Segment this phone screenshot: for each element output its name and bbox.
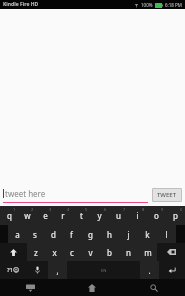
staticText: 3 xyxy=(49,207,52,212)
staticText: n xyxy=(126,247,131,258)
staticText: 7 xyxy=(123,207,126,212)
button[interactable]: x xyxy=(45,243,63,261)
button[interactable]: j xyxy=(119,225,138,243)
staticText: tweet here xyxy=(5,188,46,199)
button[interactable]: c xyxy=(63,243,81,261)
staticText: w xyxy=(24,210,31,221)
staticText: s xyxy=(33,229,37,240)
button[interactable]: k xyxy=(138,225,157,243)
button[interactable]: r xyxy=(54,206,72,225)
staticText: x xyxy=(52,247,57,258)
button[interactable]: z xyxy=(27,243,45,261)
button[interactable]: n xyxy=(119,243,138,261)
staticText: f xyxy=(70,229,73,240)
button[interactable]: , xyxy=(48,261,67,279)
staticText: r xyxy=(61,210,65,221)
staticText: . xyxy=(148,265,151,276)
button[interactable]: Symbols xyxy=(0,261,27,279)
button[interactable]: Hide keyboard xyxy=(0,279,61,296)
staticText: j xyxy=(127,229,130,240)
button[interactable]: Home xyxy=(61,279,123,296)
staticText: t xyxy=(80,210,83,221)
button[interactable]: w xyxy=(18,206,36,225)
staticText: 4 xyxy=(67,207,70,212)
staticText: 6:18 PM xyxy=(165,2,182,8)
staticText: 100% xyxy=(141,2,153,8)
staticText: d xyxy=(51,229,56,240)
staticText: 9 xyxy=(161,207,164,212)
staticText: 8 xyxy=(142,207,145,212)
staticText: EN xyxy=(101,268,107,273)
staticText: u xyxy=(116,210,121,221)
staticText: ?1☺ xyxy=(7,266,20,274)
button[interactable]: Voice input xyxy=(27,261,48,279)
staticText: i xyxy=(136,210,139,221)
button[interactable]: t xyxy=(72,206,90,225)
staticText: c xyxy=(70,247,74,258)
button[interactable]: s xyxy=(26,225,44,243)
button[interactable]: e xyxy=(36,206,54,225)
button[interactable]: TWEET xyxy=(152,188,182,202)
button[interactable]: Space xyxy=(67,261,140,279)
staticText: g xyxy=(88,229,93,240)
staticText: e xyxy=(43,210,48,221)
button[interactable]: h xyxy=(100,225,119,243)
button[interactable]: y xyxy=(90,206,109,225)
staticText: 6 xyxy=(104,207,107,212)
staticText: z xyxy=(34,247,38,258)
button[interactable]: d xyxy=(44,225,62,243)
button[interactable]: v xyxy=(81,243,100,261)
button[interactable]: Enter xyxy=(159,261,185,279)
button[interactable]: Search xyxy=(123,279,185,296)
staticText: v xyxy=(88,247,93,258)
staticText: p xyxy=(173,210,178,221)
button[interactable]: l xyxy=(157,225,176,243)
staticText: TWEET xyxy=(157,191,177,199)
staticText: b xyxy=(107,247,112,258)
staticText: o xyxy=(154,210,159,221)
button[interactable]: Backspace xyxy=(157,243,185,261)
button[interactable]: g xyxy=(81,225,100,243)
staticText: 5 xyxy=(85,207,88,212)
button[interactable]: u xyxy=(109,206,128,225)
staticText: a xyxy=(15,229,20,240)
button[interactable]: p xyxy=(166,206,185,225)
staticText: q xyxy=(7,210,12,221)
staticText: , xyxy=(56,265,59,276)
staticText: h xyxy=(107,229,112,240)
button[interactable]: Shift xyxy=(0,243,27,261)
button[interactable]: . xyxy=(140,261,159,279)
button[interactable]: o xyxy=(147,206,166,225)
button[interactable]: i xyxy=(128,206,147,225)
button[interactable]: m xyxy=(138,243,157,261)
button[interactable]: b xyxy=(100,243,119,261)
staticText: y xyxy=(97,210,102,221)
button[interactable]: a xyxy=(8,225,26,243)
button[interactable]: f xyxy=(62,225,81,243)
staticText: m xyxy=(144,247,152,258)
staticText: Kindle Fire HD xyxy=(3,1,39,8)
staticText: 2 xyxy=(31,207,34,212)
button[interactable]: tweet here xyxy=(3,188,148,203)
button[interactable]: q xyxy=(0,206,18,225)
staticText: 1 xyxy=(13,207,16,212)
staticText: l xyxy=(165,229,168,240)
staticText: k xyxy=(145,229,150,240)
staticText: 0 xyxy=(180,207,183,212)
